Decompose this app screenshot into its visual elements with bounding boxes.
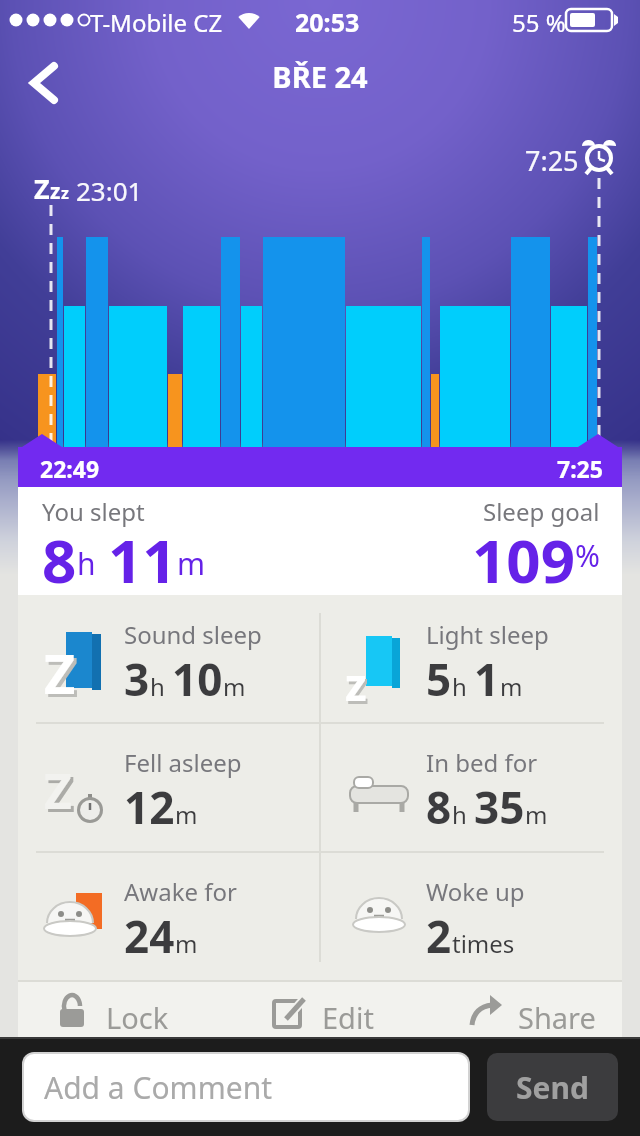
staticText: Fell asleep <box>124 746 242 779</box>
staticText: 2 <box>426 906 452 966</box>
staticText: h <box>452 670 467 703</box>
button[interactable]: Add a Comment <box>24 1054 468 1120</box>
staticText: Z <box>47 639 79 705</box>
button[interactable] <box>20 58 70 108</box>
staticText: Z <box>34 170 50 207</box>
staticText: 35 <box>474 777 525 837</box>
staticText: m <box>177 543 206 584</box>
staticText: Send <box>516 1067 589 1108</box>
staticText: Woke up <box>426 875 525 908</box>
staticText: 7:25 <box>525 142 579 179</box>
staticText: In bed for <box>426 746 538 779</box>
staticText: 109 <box>472 519 575 586</box>
staticText: m <box>223 670 246 703</box>
staticText: z <box>345 654 367 714</box>
staticText: 23:01 <box>76 173 143 208</box>
button[interactable]: Lock <box>54 986 169 1036</box>
staticText: Z <box>47 761 75 826</box>
staticText: 1 <box>474 649 500 709</box>
staticText: % <box>575 535 600 576</box>
staticText: T-Mobile CZ <box>90 6 223 39</box>
staticText: m <box>175 798 198 831</box>
staticText: 12 <box>124 777 175 837</box>
staticText: 20:53 <box>295 5 360 39</box>
staticText: m <box>525 798 548 831</box>
staticText: Light sleep <box>426 618 549 651</box>
staticText: z <box>347 657 369 717</box>
staticText: 11 <box>108 519 177 594</box>
staticText: Lock <box>106 998 169 1037</box>
staticText: 8 <box>42 519 77 594</box>
staticText: Z <box>44 636 76 702</box>
button[interactable]: Woke up <box>320 852 622 980</box>
staticText: 22:49 <box>40 453 100 484</box>
staticText: m <box>500 670 523 703</box>
staticText: 3 <box>124 649 150 709</box>
staticText: 7:25 <box>557 453 603 484</box>
button[interactable]: Z <box>18 595 320 723</box>
button[interactable]: Edit <box>270 986 374 1036</box>
staticText: h <box>452 798 467 831</box>
staticText: 10 <box>172 649 223 709</box>
button[interactable]: Z <box>18 723 320 851</box>
staticText: Add a Comment <box>44 1067 272 1108</box>
staticText: Sleep goal <box>483 495 600 528</box>
staticText: BŘE 24 <box>0 57 640 96</box>
staticText: m <box>175 927 198 960</box>
staticText: times <box>452 927 515 960</box>
button[interactable]: Share <box>466 986 596 1036</box>
button[interactable]: z <box>320 595 622 723</box>
staticText: 5 <box>426 649 452 709</box>
staticText: z <box>61 182 69 204</box>
staticText: Share <box>518 998 596 1037</box>
button[interactable]: In bed for <box>320 723 622 851</box>
staticText: h <box>150 670 165 703</box>
staticText: 55 % <box>512 6 566 39</box>
staticText: 24 <box>124 906 175 966</box>
button[interactable]: Awake for <box>18 852 320 980</box>
staticText: Awake for <box>124 875 237 908</box>
staticText: Z <box>44 758 72 823</box>
staticText: h <box>77 543 96 584</box>
staticText: 8 <box>426 777 452 837</box>
staticText: Sound sleep <box>124 618 262 651</box>
staticText: z <box>50 177 61 206</box>
staticText: You slept <box>42 495 145 528</box>
button[interactable]: Send <box>487 1053 618 1121</box>
staticText: Edit <box>322 998 374 1037</box>
